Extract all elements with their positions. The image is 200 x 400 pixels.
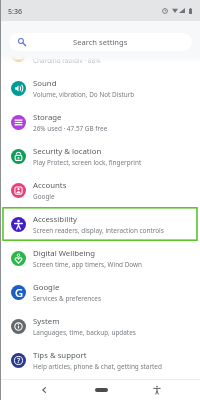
staticText: Screen readers, display, interaction con… [33,226,164,235]
staticText: System [33,316,60,327]
button[interactable]: Accounts [0,173,200,207]
button[interactable]: Battery [0,37,200,63]
staticText: Charging rapidly · 88% [33,56,101,63]
button[interactable]: Digital Wellbeing [0,241,200,275]
button[interactable]: Sound [0,71,200,105]
staticText: Google [33,192,55,201]
button[interactable]: Accessibility [0,207,200,241]
staticText: Accessibility [33,214,77,225]
staticText: Storage [33,112,62,123]
staticText: Google [33,282,60,293]
staticText: Screen time, app timers, Wind Down [33,260,143,269]
button[interactable]: ? [0,343,200,377]
staticText: Services & preferences [33,294,102,303]
button[interactable]: Security & location [0,139,200,173]
staticText: Accounts [33,180,67,191]
staticText: Play Protect, screen lock, fingerprint [33,158,142,167]
staticText: Languages, time, backup, updates [33,328,136,337]
staticText: ? [17,356,21,366]
staticText: Search settings [73,37,128,47]
staticText: Volume, vibration, Do Not Disturb [33,90,135,99]
button[interactable]: Accessibility [141,379,173,400]
button[interactable]: System [0,309,200,343]
staticText: G [15,285,23,300]
staticText: Help articles, phone & chat, getting sta… [33,362,162,371]
button[interactable]: Storage [0,105,200,139]
staticText: Battery [33,44,60,55]
staticText: Tips & support [33,350,87,361]
staticText: 5:36 [8,6,23,16]
staticText: 26% used · 47.57 GB free [33,124,108,133]
button[interactable]: Home [85,379,117,400]
staticText: Sound [33,78,57,89]
button[interactable]: Search settings [9,33,192,51]
button[interactable]: Back [28,379,60,400]
staticText: Digital Wellbeing [33,248,96,259]
staticText: Security & location [33,146,102,157]
button[interactable]: G [0,275,200,309]
